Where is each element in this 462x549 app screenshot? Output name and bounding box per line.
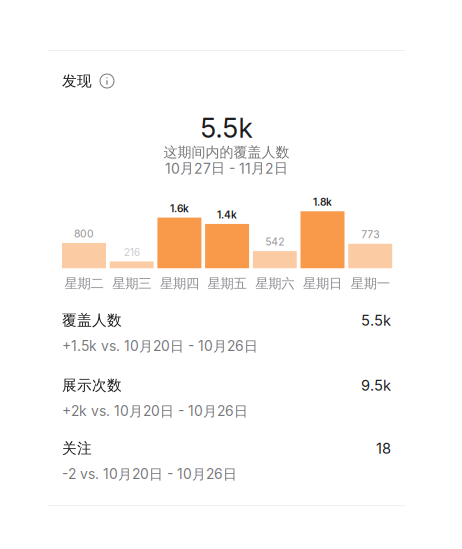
staticText: 展示次数 bbox=[62, 376, 122, 395]
staticText: 1.6k bbox=[170, 202, 189, 215]
staticText: 星期日 bbox=[303, 275, 342, 292]
staticText: 10月27日 - 11月2日 bbox=[165, 159, 288, 177]
staticText: 星期六 bbox=[255, 275, 294, 292]
staticText: 覆盖人数 bbox=[62, 311, 122, 330]
staticText: 216 bbox=[124, 246, 140, 258]
button[interactable]: 关注 bbox=[62, 439, 391, 482]
staticText: 星期五 bbox=[208, 275, 247, 292]
button[interactable]: 覆盖人数 bbox=[62, 311, 391, 376]
staticText: 1.4k bbox=[217, 209, 237, 221]
staticText: 542 bbox=[265, 235, 284, 248]
button[interactable]: 展示次数 bbox=[62, 376, 391, 439]
staticText: +2k vs. 10月20日 - 10月26日 bbox=[62, 402, 248, 420]
staticText: 星期二 bbox=[64, 275, 103, 292]
staticText: 星期三 bbox=[112, 275, 151, 292]
staticText: 这期间内的覆盖人数 bbox=[163, 143, 289, 161]
staticText: 773 bbox=[361, 228, 379, 241]
staticText: 18 bbox=[376, 439, 391, 457]
staticText: 5.5k bbox=[200, 112, 252, 144]
staticText: 5.5k bbox=[361, 311, 391, 329]
button[interactable]: 发现 bbox=[48, 72, 114, 90]
staticText: +1.5k vs. 10月20日 - 10月26日 bbox=[62, 337, 258, 355]
staticText: 星期四 bbox=[160, 275, 199, 292]
staticText: 800 bbox=[74, 227, 94, 240]
staticText: 关注 bbox=[62, 439, 92, 458]
staticText: 1.8k bbox=[313, 196, 332, 208]
staticText: 星期一 bbox=[351, 275, 390, 292]
staticText: 发现 bbox=[62, 72, 92, 90]
staticText: 9.5k bbox=[361, 376, 391, 394]
staticText: -2 vs. 10月20日 - 10月26日 bbox=[62, 465, 237, 483]
